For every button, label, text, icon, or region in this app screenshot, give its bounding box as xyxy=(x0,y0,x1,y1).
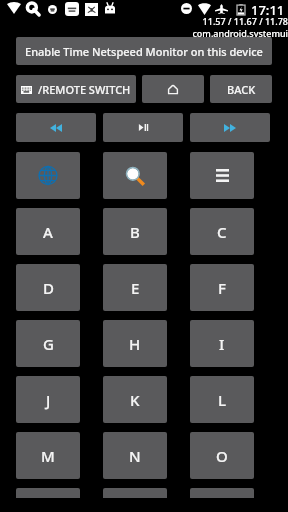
button[interactable]: Rewind xyxy=(16,113,96,142)
button[interactable]: /REMOTE SWITCH xyxy=(16,75,136,103)
button[interactable]: B xyxy=(103,208,167,255)
button[interactable]: C xyxy=(190,208,254,255)
staticText: C xyxy=(217,222,227,242)
staticText: /REMOTE SWITCH xyxy=(38,82,131,97)
button[interactable]: H xyxy=(103,320,167,367)
staticText: A xyxy=(43,222,53,242)
button[interactable]: J xyxy=(16,376,80,423)
button[interactable]: L xyxy=(190,376,254,423)
button[interactable]: G xyxy=(16,320,80,367)
button[interactable]: E xyxy=(103,264,167,311)
button[interactable]: Home xyxy=(142,75,204,103)
staticText: L xyxy=(218,390,227,410)
staticText: F xyxy=(218,278,226,298)
staticText: 17:11 xyxy=(251,1,285,19)
button[interactable]: K xyxy=(103,376,167,423)
staticText: I xyxy=(219,334,225,354)
button[interactable]: N xyxy=(103,432,167,479)
button[interactable]: F xyxy=(190,264,254,311)
staticText: H xyxy=(129,334,141,354)
staticText: BACK xyxy=(227,82,256,97)
button[interactable]: O xyxy=(190,432,254,479)
button[interactable]: Browser xyxy=(16,152,80,199)
button[interactable]: M xyxy=(16,432,80,479)
staticText: K xyxy=(130,390,140,410)
staticText: O xyxy=(216,446,228,466)
button[interactable]: Menu xyxy=(190,152,254,199)
staticText: 11.57 / 11.67 / 11.78 xyxy=(202,15,288,27)
button[interactable]: R xyxy=(190,488,254,498)
staticText: G xyxy=(43,334,54,354)
button[interactable]: Search xyxy=(103,152,167,199)
staticText: J xyxy=(46,390,51,410)
staticText: D xyxy=(43,278,54,298)
button[interactable]: Fast forward xyxy=(190,113,270,142)
staticText: N xyxy=(129,446,141,466)
button[interactable]: Play pause xyxy=(103,113,183,142)
staticText: Enable Time Netspeed Monitor on this dev… xyxy=(25,44,263,59)
staticText: com.android.systemui xyxy=(192,27,288,39)
staticText: E xyxy=(131,278,140,298)
button[interactable]: A xyxy=(16,208,80,255)
button[interactable]: Q xyxy=(103,488,167,498)
button[interactable]: I xyxy=(190,320,254,367)
button[interactable]: BACK xyxy=(210,75,272,103)
staticText: B xyxy=(130,222,140,242)
staticText: M xyxy=(41,446,55,466)
button[interactable]: Enable Time Netspeed Monitor on this dev… xyxy=(16,37,272,65)
button[interactable]: P xyxy=(16,488,80,498)
button[interactable]: D xyxy=(16,264,80,311)
